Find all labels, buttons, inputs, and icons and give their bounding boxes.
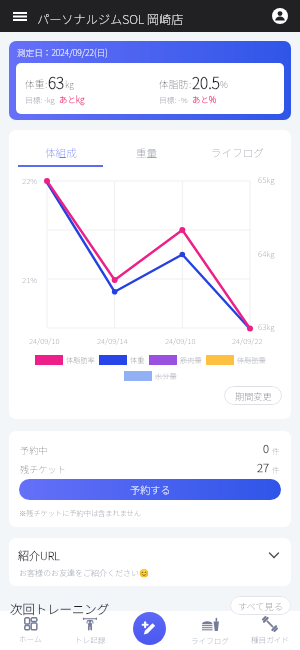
staticText: ※残チケットに予約中は含まれません: [19, 508, 141, 518]
button[interactable]: 予約する: [19, 479, 281, 500]
button[interactable]: ホーム: [0, 611, 60, 650]
staticText: 体脂肪: [159, 77, 189, 91]
staticText: ライフログ: [211, 145, 264, 160]
staticText: 22%: [22, 175, 38, 187]
button[interactable]: 重量: [111, 130, 183, 165]
staticText: 水分量: [155, 371, 177, 381]
button[interactable]: すべて見る: [230, 596, 291, 615]
staticText: kg: [65, 78, 74, 91]
staticText: あとkg: [59, 93, 85, 105]
staticText: 予約する: [130, 482, 171, 497]
button[interactable]: 紹介URL: [9, 538, 291, 586]
staticText: 目標: -kg: [25, 94, 55, 105]
button[interactable]: 体脂肪量: [206, 355, 266, 365]
staticText: 64kg: [258, 248, 275, 260]
button[interactable]: 水分量: [124, 371, 177, 381]
staticText: 種目ガイド: [251, 634, 289, 645]
staticText: 筋肉量: [180, 355, 202, 365]
button[interactable]: 種目ガイド: [240, 611, 300, 650]
button[interactable]: 体組成: [18, 130, 103, 165]
staticText: %: [220, 78, 228, 91]
staticText: 体脂肪率: [66, 355, 95, 365]
staticText: 体重: [130, 355, 145, 365]
staticText: 24/09/10: [29, 335, 60, 346]
button[interactable]: 体脂肪率: [35, 355, 95, 365]
staticText: 24/09/14: [97, 335, 128, 346]
staticText: 体脂肪量: [237, 355, 266, 365]
button[interactable]: 記録を追加: [133, 612, 166, 645]
staticText: あと%: [192, 93, 217, 105]
staticText: 件: [272, 445, 280, 456]
staticText: 重量: [136, 145, 158, 160]
staticText: 残チケット: [20, 462, 66, 475]
staticText: 24/09/22: [232, 335, 263, 346]
staticText: トレ記録: [75, 634, 106, 645]
button[interactable]: メニュー: [8, 6, 32, 26]
button[interactable]: 筋肉量: [149, 355, 202, 365]
staticText: :: [189, 77, 192, 91]
staticText: 0: [263, 440, 269, 457]
staticText: お客様のお友達をご紹介ください😊: [19, 567, 149, 579]
staticText: 測定日：2024/09/22(日): [17, 46, 108, 58]
button[interactable]: ライフログ: [180, 611, 240, 650]
staticText: 24/09/18: [165, 335, 196, 346]
staticText: 20.5: [192, 71, 220, 93]
staticText: 27: [257, 459, 269, 476]
staticText: ライフログ: [191, 635, 229, 646]
staticText: 21%: [22, 274, 38, 286]
button[interactable]: トレ記録: [60, 611, 120, 650]
staticText: 予約中: [20, 443, 48, 456]
staticText: 63: [48, 71, 65, 93]
staticText: 体重: [25, 77, 45, 91]
staticText: 体組成: [45, 145, 77, 160]
button[interactable]: ライフログ: [183, 130, 291, 165]
staticText: 期間変更: [235, 389, 272, 402]
staticText: パーソナルジムSOL 岡崎店: [37, 10, 184, 28]
staticText: すべて見る: [238, 599, 283, 612]
button[interactable]: アカウント: [270, 6, 290, 26]
button[interactable]: 期間変更: [224, 386, 282, 405]
staticText: ホーム: [19, 633, 42, 644]
staticText: 紹介URL: [18, 547, 60, 563]
staticText: 63kg: [258, 321, 275, 333]
button[interactable]: 体重: [99, 355, 145, 365]
staticText: 目標: -%: [159, 94, 188, 105]
staticText: 65kg: [258, 174, 275, 186]
staticText: 件: [272, 464, 280, 475]
staticText: 次回トレーニング: [10, 600, 110, 618]
staticText: :: [45, 77, 48, 91]
